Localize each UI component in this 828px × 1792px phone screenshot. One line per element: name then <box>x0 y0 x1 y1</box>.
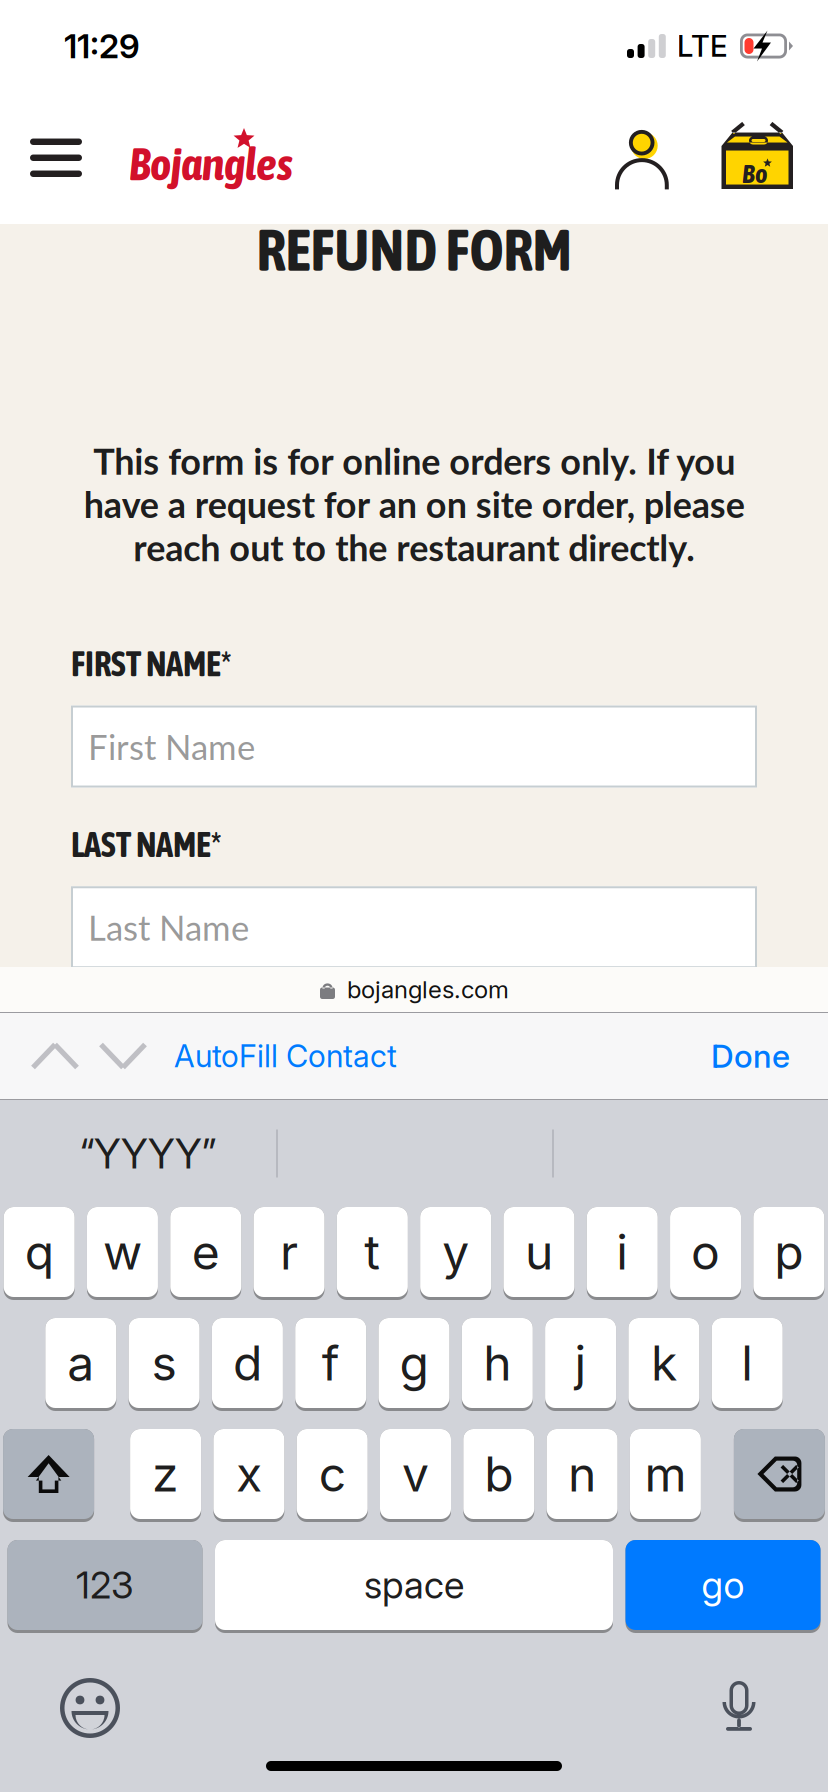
button[interactable]: t <box>337 1207 408 1300</box>
button[interactable]: Menu <box>16 124 96 191</box>
button[interactable]: r <box>253 1207 324 1300</box>
staticText: y <box>442 1223 469 1281</box>
staticText: r <box>280 1223 298 1281</box>
button[interactable]: AutoFill Contact <box>150 1037 409 1074</box>
button[interactable]: 123 <box>7 1540 202 1633</box>
button[interactable]: Emoji keyboard <box>58 1676 122 1740</box>
button[interactable]: u <box>503 1207 574 1300</box>
staticText: b <box>484 1445 513 1503</box>
button[interactable]: Delete <box>734 1429 825 1522</box>
staticText: c <box>319 1445 346 1503</box>
staticText: FIRST NAME* <box>71 644 231 683</box>
staticText: LAST NAME* <box>71 825 221 864</box>
button[interactable]: g <box>378 1318 449 1411</box>
button[interactable]: f <box>295 1318 366 1411</box>
button[interactable]: Shift <box>3 1429 94 1522</box>
staticText: go <box>701 1562 744 1608</box>
staticText: o <box>691 1223 720 1281</box>
staticText: h <box>483 1334 511 1392</box>
button[interactable]: l <box>712 1318 783 1411</box>
staticText: g <box>399 1334 428 1392</box>
staticText: 123 <box>76 1562 134 1608</box>
button[interactable]: x <box>213 1429 284 1522</box>
button[interactable]: Dictation <box>712 1681 766 1735</box>
staticText: k <box>651 1334 677 1392</box>
button[interactable]: Previous field <box>28 1038 82 1074</box>
staticText: bojangles.com <box>347 975 509 1004</box>
button[interactable]: space <box>215 1540 613 1633</box>
staticText: AutoFill Contact <box>174 1037 397 1074</box>
button[interactable]: h <box>462 1318 533 1411</box>
button[interactable]: i <box>587 1207 658 1300</box>
button[interactable]: a <box>45 1318 116 1411</box>
staticText: a <box>67 1334 94 1392</box>
button[interactable]: q <box>4 1207 75 1300</box>
button[interactable]: w <box>87 1207 158 1300</box>
button[interactable]: Order bag <box>706 112 809 204</box>
staticText: “YYYY” <box>80 1128 216 1178</box>
button[interactable]: j <box>545 1318 616 1411</box>
button[interactable]: k <box>628 1318 699 1411</box>
staticText: e <box>192 1223 220 1281</box>
staticText: p <box>774 1223 803 1281</box>
button[interactable]: z <box>130 1429 201 1522</box>
staticText: space <box>364 1562 464 1608</box>
staticText: w <box>103 1223 142 1281</box>
staticText: x <box>236 1445 262 1503</box>
staticText: j <box>575 1334 587 1392</box>
staticText: This form is for online orders only. If … <box>83 439 744 569</box>
button[interactable]: e <box>170 1207 241 1300</box>
button[interactable]: d <box>212 1318 283 1411</box>
staticText: d <box>233 1334 262 1392</box>
button[interactable]: n <box>547 1429 618 1522</box>
button[interactable]: Done <box>711 1037 790 1075</box>
button[interactable]: m <box>630 1429 701 1522</box>
staticText: 11:29 <box>64 26 140 66</box>
staticText: v <box>402 1445 429 1503</box>
button[interactable]: y <box>420 1207 491 1300</box>
staticText: Done <box>711 1037 790 1075</box>
button[interactable]: Account <box>601 111 683 204</box>
button[interactable]: p <box>753 1207 824 1300</box>
button[interactable]: o <box>670 1207 741 1300</box>
staticText: n <box>568 1445 596 1503</box>
button[interactable]: c <box>297 1429 368 1522</box>
staticText: f <box>322 1334 340 1392</box>
button[interactable]: Next field <box>96 1038 150 1074</box>
staticText: Last Name <box>88 906 249 948</box>
staticText: Bo <box>742 158 768 189</box>
button[interactable]: b <box>463 1429 534 1522</box>
button[interactable]: go <box>625 1540 820 1633</box>
staticText: i <box>616 1223 628 1281</box>
staticText: s <box>152 1334 177 1392</box>
button[interactable]: s <box>129 1318 200 1411</box>
staticText: Bojangles <box>129 138 293 190</box>
staticText: q <box>25 1223 54 1281</box>
staticText: First Name <box>88 726 255 767</box>
staticText: t <box>364 1223 380 1281</box>
staticText: l <box>741 1334 753 1392</box>
staticText: m <box>644 1445 686 1503</box>
staticText: LTE <box>677 28 728 64</box>
staticText: REFUND FORM <box>256 216 571 283</box>
staticText: z <box>152 1445 179 1503</box>
staticText: u <box>525 1223 553 1281</box>
button[interactable]: v <box>380 1429 451 1522</box>
